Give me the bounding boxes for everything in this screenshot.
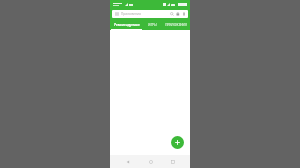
button[interactable]: Recent apps: [167, 156, 178, 167]
staticText: Приложения: [121, 12, 169, 16]
button[interactable]: Рекомендуемые: [110, 19, 143, 30]
staticText: ИГРЫ: [148, 23, 157, 27]
button[interactable]: Cart: [175, 11, 181, 17]
staticText: Рекомендуемые: [114, 23, 140, 27]
button[interactable]: ИГРЫ: [143, 19, 162, 30]
button[interactable]: Add: [171, 136, 184, 149]
button[interactable]: Home: [145, 156, 156, 167]
button[interactable]: Back: [122, 156, 133, 167]
button[interactable]: ПРИЛОЖЕНИЯ: [162, 19, 190, 30]
button[interactable]: Menu: [114, 11, 120, 17]
button[interactable]: Menu: [112, 10, 188, 18]
button[interactable]: More options: [181, 11, 187, 17]
staticText: ПРИЛОЖЕНИЯ: [165, 23, 187, 27]
button[interactable]: Search: [169, 11, 175, 17]
